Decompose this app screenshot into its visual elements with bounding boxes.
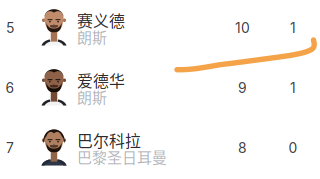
staticText: 10 (235, 19, 250, 36)
staticText: 赛义德 (77, 8, 125, 31)
button[interactable]: 6 (0, 59, 320, 119)
staticText: 7 (6, 139, 14, 156)
button[interactable]: 5 (0, 0, 320, 59)
staticText: 1 (290, 19, 296, 36)
staticText: 爱德华 (77, 68, 125, 91)
staticText: 9 (238, 79, 247, 96)
staticText: 0 (288, 139, 297, 156)
staticText: 8 (238, 139, 247, 156)
staticText: 朗斯 (77, 26, 107, 48)
staticText: 巴尔科拉 (77, 128, 141, 151)
staticText: 5 (6, 19, 14, 36)
staticText: 1 (290, 79, 296, 96)
staticText: 朗斯 (77, 86, 107, 108)
button[interactable]: 7 (0, 119, 320, 179)
staticText: 6 (5, 79, 14, 96)
staticText: 巴黎圣日耳曼 (77, 146, 167, 168)
